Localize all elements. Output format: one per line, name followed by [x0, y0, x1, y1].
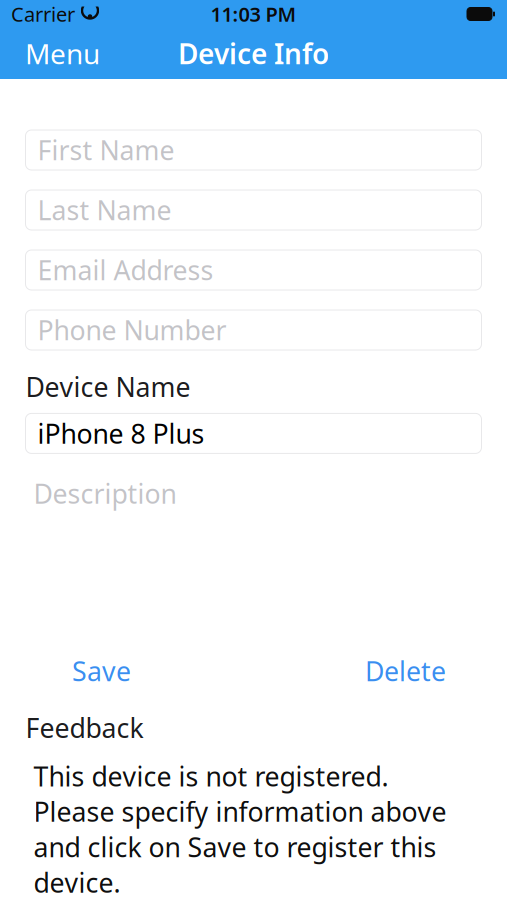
staticText: Carrier [11, 1, 75, 27]
staticText: Last Name [37, 192, 171, 228]
staticText: Feedback [25, 710, 143, 745]
staticText: Phone Number [37, 312, 226, 348]
staticText: iPhone 8 Plus [37, 416, 204, 451]
button[interactable]: Save [25, 654, 177, 688]
button[interactable]: First Name [25, 130, 481, 170]
staticText: Menu [25, 35, 100, 72]
staticText: Description [33, 476, 176, 511]
staticText: Delete [365, 653, 446, 689]
button[interactable]: Menu [19, 29, 106, 78]
staticText: Device Info [178, 35, 329, 72]
staticText: 11:03 PM [210, 1, 296, 27]
button[interactable]: iPhone 8 Plus [25, 413, 481, 453]
staticText: First Name [37, 132, 174, 168]
button[interactable]: Last Name [25, 190, 481, 230]
staticText: This device is not registered. Please sp… [33, 758, 446, 900]
button[interactable]: Description [25, 473, 481, 513]
button[interactable]: Delete [329, 654, 481, 688]
button[interactable]: Email Address [25, 250, 481, 290]
staticText: Email Address [37, 252, 213, 288]
staticText: Device Name [25, 369, 190, 404]
staticText: Save [72, 653, 131, 689]
button[interactable]: Phone Number [25, 310, 481, 350]
